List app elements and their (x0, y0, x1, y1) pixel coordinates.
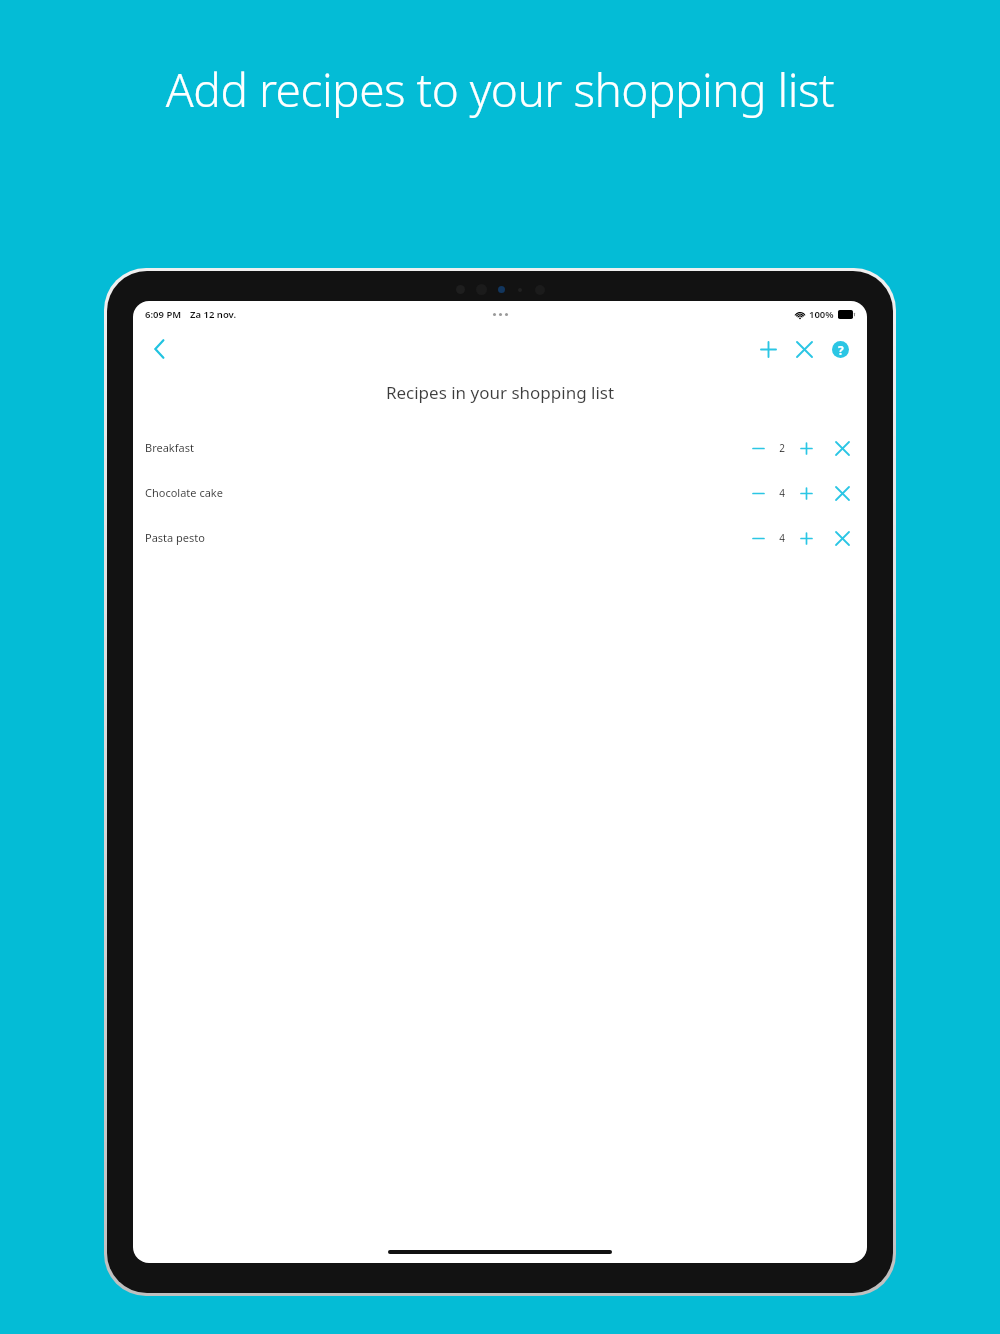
button[interactable]: Remove Chocolate cake (827, 478, 857, 508)
button[interactable]: Help (823, 332, 857, 366)
staticText: 4 (779, 531, 785, 545)
staticText: 2 (779, 441, 785, 455)
staticText: 100% (809, 308, 834, 321)
button[interactable]: Breakfast (133, 425, 867, 470)
staticText: 4 (779, 486, 785, 500)
button[interactable]: Chocolate cake (133, 470, 867, 515)
staticText: Pasta pesto (145, 530, 205, 545)
button[interactable]: Remove Breakfast (827, 433, 857, 463)
staticText: Recipes in your shopping list (133, 381, 867, 404)
button[interactable]: Decrease Chocolate cake (743, 478, 773, 508)
button[interactable]: Back (139, 329, 179, 369)
staticText: Breakfast (145, 440, 194, 455)
staticText: Chocolate cake (145, 485, 223, 500)
button[interactable]: Decrease Pasta pesto (743, 523, 773, 553)
button[interactable]: Clear all (787, 332, 821, 366)
button[interactable]: Remove Pasta pesto (827, 523, 857, 553)
button[interactable]: Increase Breakfast (791, 433, 821, 463)
staticText: 6:09 PM (145, 308, 182, 321)
button[interactable]: Pasta pesto (133, 515, 867, 560)
staticText: Add recipes to your shopping list (0, 58, 1000, 121)
staticText: Za 12 nov. (190, 308, 237, 321)
button[interactable]: Increase Chocolate cake (791, 478, 821, 508)
button[interactable]: Increase Pasta pesto (791, 523, 821, 553)
button[interactable]: Add recipe (751, 332, 785, 366)
button[interactable]: Decrease Breakfast (743, 433, 773, 463)
staticText: ? (838, 342, 844, 358)
